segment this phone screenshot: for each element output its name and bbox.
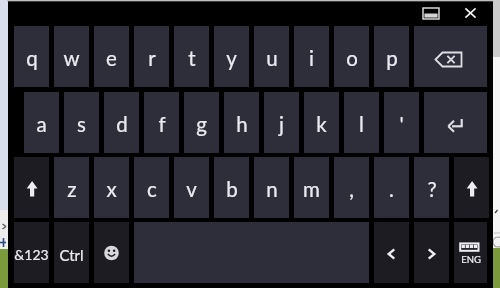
button[interactable]: r [134,26,169,87]
staticText: t [188,46,196,71]
staticText: d [116,112,128,137]
button[interactable]: Backspace [414,26,487,87]
staticText: . [389,177,394,202]
button[interactable]: f [144,92,179,153]
button[interactable]: Shift [454,157,489,218]
button[interactable]: v [174,157,209,218]
staticText: c [147,177,157,202]
staticText: z [67,177,77,202]
button[interactable]: z [54,157,89,218]
staticText: j [279,112,284,137]
button[interactable]: t [174,26,209,87]
staticText: w [63,46,80,71]
button[interactable]: a [24,92,59,153]
button[interactable]: q [14,26,49,87]
staticText: ? [427,177,437,202]
button[interactable]: c [134,157,169,218]
button[interactable]: Emoji [94,222,129,283]
button[interactable]: d [104,92,139,153]
staticText: o [346,46,358,71]
staticText: n [266,177,278,202]
staticText: &123 [14,246,49,263]
button[interactable]: j [264,92,299,153]
button[interactable]: Close keyboard [452,0,488,26]
button[interactable]: n [254,157,289,218]
staticText: ENG [461,254,481,265]
staticText: ' [399,112,404,137]
button[interactable]: Shift [14,157,49,218]
staticText: b [226,177,238,202]
button[interactable]: Dock keyboard [412,0,450,26]
button[interactable]: ? [414,157,449,218]
staticText: l [359,112,364,137]
staticText: y [226,46,237,71]
staticText: r [148,46,156,71]
staticText: a [36,112,47,137]
button[interactable]: ' [384,92,419,153]
button[interactable]: o [334,26,369,87]
button[interactable]: , [334,157,369,218]
button[interactable]: l [344,92,379,153]
button[interactable]: e [94,26,129,87]
staticText: h [236,112,248,137]
button[interactable]: i [294,26,329,87]
staticText: q [26,46,38,71]
staticText: x [106,177,117,202]
button[interactable]: Move cursor left [374,222,409,283]
button[interactable]: &123 [14,222,49,283]
staticText: u [266,46,278,71]
button[interactable]: Change input language, English [454,222,487,283]
button[interactable]: x [94,157,129,218]
button[interactable]: k [304,92,339,153]
button[interactable]: . [374,157,409,218]
button[interactable]: y [214,26,249,87]
button[interactable]: m [294,157,329,218]
button[interactable]: Ctrl [54,222,89,283]
staticText: g [196,112,207,137]
staticText: p [386,46,398,71]
button[interactable]: Move cursor right [414,222,449,283]
staticText: f [158,112,166,137]
staticText: i [309,46,314,71]
button[interactable]: g [184,92,219,153]
button[interactable]: Enter [424,92,487,153]
staticText: s [77,112,86,137]
staticText: , [349,177,354,202]
staticText: k [316,112,327,137]
button[interactable]: p [374,26,409,87]
button[interactable]: s [64,92,99,153]
staticText: e [106,46,117,71]
staticText: v [186,177,197,202]
button[interactable]: h [224,92,259,153]
staticText: m [303,177,320,202]
button[interactable]: b [214,157,249,218]
button[interactable]: u [254,26,289,87]
button[interactable]: w [54,26,89,87]
staticText: Ctrl [59,246,84,264]
